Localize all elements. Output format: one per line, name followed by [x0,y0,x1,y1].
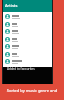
button[interactable] [3,21,52,28]
button[interactable] [3,36,52,43]
button[interactable] [3,51,52,58]
staticText: Added to favourites [7,67,35,71]
button[interactable]: Artists [3,0,52,12]
button[interactable] [3,58,52,65]
button[interactable] [3,28,52,35]
button[interactable] [3,13,52,20]
staticText: Artists [5,3,18,8]
staticText: Sorted by music genre and location [0,88,64,93]
button[interactable] [3,43,52,50]
